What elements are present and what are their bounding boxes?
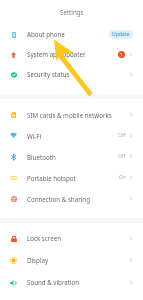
button[interactable]: Sound & vibration: [0, 271, 143, 293]
button[interactable]: SIM cards & mobile networks: [0, 104, 143, 125]
staticText: Security status: [27, 70, 70, 78]
staticText: Off: [118, 132, 126, 139]
staticText: System app updater: [27, 50, 86, 58]
button[interactable]: Security status: [0, 64, 143, 84]
staticText: 1: [120, 52, 123, 58]
staticText: Settings: [60, 8, 84, 16]
button[interactable]: About phone: [0, 24, 143, 44]
staticText: On: [119, 174, 126, 181]
staticText: Update: [112, 31, 130, 38]
staticText: Wi-Fi: [27, 132, 42, 140]
staticText: Display: [27, 256, 49, 264]
staticText: Connection & sharing: [27, 195, 90, 203]
staticText: Off: [118, 153, 126, 160]
staticText: Sound & vibration: [27, 278, 80, 286]
button[interactable]: Display: [0, 249, 143, 271]
button[interactable]: Bluetooth: [0, 146, 143, 167]
button[interactable]: Portable hotspot: [0, 167, 143, 188]
other: Pointer: [0, 0, 143, 300]
button[interactable]: Lock screen: [0, 227, 143, 249]
button[interactable]: Connection & sharing: [0, 188, 143, 209]
button[interactable]: System app updater: [0, 44, 143, 64]
staticText: SIM cards & mobile networks: [27, 111, 112, 119]
staticText: Portable hotspot: [27, 174, 76, 182]
staticText: Bluetooth: [27, 153, 56, 161]
staticText: About phone: [27, 30, 65, 38]
button[interactable]: Update: [109, 30, 133, 39]
staticText: Lock screen: [27, 234, 62, 242]
button[interactable]: Wi-Fi: [0, 125, 143, 146]
